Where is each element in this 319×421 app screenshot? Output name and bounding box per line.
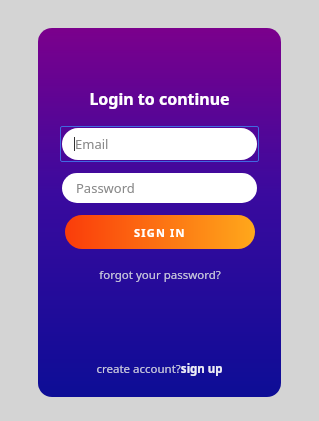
button[interactable]: create account?sign up (88, 357, 231, 381)
staticText: Login to continue (89, 88, 230, 110)
staticText: create account?sign up (96, 361, 223, 377)
button[interactable]: forgot your password? (91, 263, 229, 287)
staticText: SIGN IN (134, 225, 186, 240)
button[interactable]: Email (62, 128, 257, 160)
button[interactable]: SIGN IN (65, 215, 255, 249)
staticText: Email (75, 135, 109, 153)
staticText: forgot your password? (99, 267, 221, 283)
button[interactable]: Password (62, 173, 257, 203)
staticText: Password (76, 179, 135, 197)
